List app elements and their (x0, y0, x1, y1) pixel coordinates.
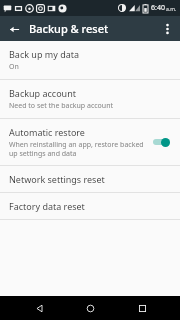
staticText: Back up my data (9, 48, 80, 60)
staticText: On (9, 62, 19, 72)
button[interactable]: Recent apps (129, 296, 155, 320)
staticText: Automatic restore (9, 126, 85, 138)
staticText: Backup & reset (29, 21, 109, 36)
button[interactable]: More options (157, 19, 177, 39)
button[interactable]: Backup account (0, 80, 180, 118)
staticText: When reinstalling an app, restore backed… (9, 140, 144, 158)
button[interactable]: Automatic restore (0, 119, 180, 165)
button[interactable]: Back (26, 296, 52, 320)
staticText: Need to set the backup account (9, 101, 114, 111)
staticText: a.m. (166, 6, 177, 13)
button[interactable]: Network settings reset (0, 166, 180, 192)
button[interactable]: Factory data reset (0, 193, 180, 219)
button[interactable]: Automatic restore toggle (151, 135, 173, 149)
button[interactable]: Home (77, 296, 103, 320)
staticText: Factory data reset (9, 200, 85, 212)
staticText: 6:40 (151, 3, 165, 13)
staticText: Backup account (9, 87, 76, 99)
button[interactable]: Back up my data (0, 41, 180, 79)
button[interactable]: Back (4, 19, 24, 39)
staticText: Network settings reset (9, 173, 105, 185)
